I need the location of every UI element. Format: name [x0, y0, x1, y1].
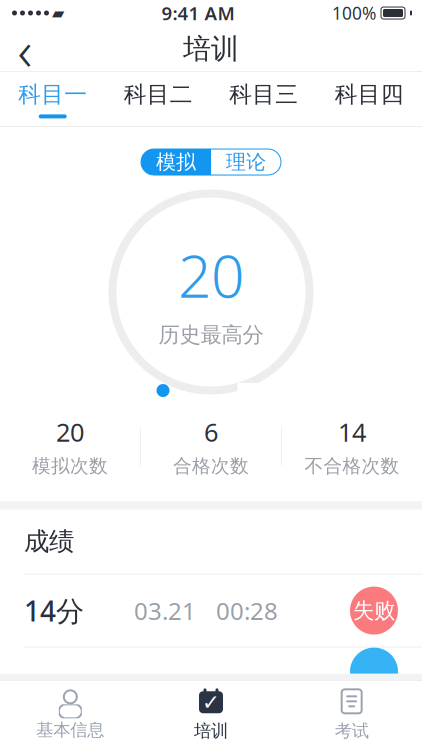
staticText: 科目一: [18, 81, 87, 108]
button[interactable]: 理论: [211, 149, 281, 175]
button[interactable]: 模拟: [141, 149, 211, 175]
staticText: 理论: [226, 150, 266, 174]
staticText: ▰: [52, 4, 64, 22]
staticText: 模拟次数: [32, 455, 108, 477]
button[interactable]: 科目四: [316, 72, 422, 127]
staticText: 科目四: [335, 81, 404, 108]
staticText: 14分: [24, 592, 84, 629]
staticText: 14: [338, 415, 366, 449]
staticText: 基本信息: [36, 719, 104, 741]
button[interactable]: ✓: [141, 681, 281, 749]
staticText: 9:41 AM: [161, 1, 234, 25]
staticText: 20: [178, 236, 244, 314]
button[interactable]: 科目一: [0, 72, 105, 127]
staticText: 历史最高分: [158, 322, 263, 348]
staticText: 合格次数: [173, 455, 249, 477]
staticText: 成绩: [24, 526, 74, 557]
button[interactable]: 考试: [281, 681, 422, 749]
staticText: ✓: [202, 690, 220, 714]
button[interactable]: 科目三: [211, 72, 316, 127]
staticText: 100%: [332, 1, 376, 24]
staticText: ‹: [17, 12, 32, 86]
staticText: 20: [56, 415, 84, 449]
button[interactable]: 基本信息: [0, 681, 141, 749]
staticText: 考试: [335, 720, 369, 742]
staticText: 科目三: [229, 81, 298, 108]
staticText: 00:28: [216, 595, 278, 626]
button[interactable]: 科目二: [105, 72, 211, 127]
staticText: 03.21: [134, 595, 196, 626]
staticText: 6: [204, 415, 218, 449]
staticText: 不合格次数: [304, 455, 399, 477]
staticText: 科目二: [124, 81, 193, 108]
staticText: 模拟: [156, 150, 196, 174]
staticText: 培训: [183, 32, 239, 66]
staticText: 失败: [353, 597, 395, 624]
staticText: 培训: [194, 720, 228, 742]
button[interactable]: Back: [0, 26, 50, 72]
button[interactable]: 14分: [0, 575, 422, 647]
